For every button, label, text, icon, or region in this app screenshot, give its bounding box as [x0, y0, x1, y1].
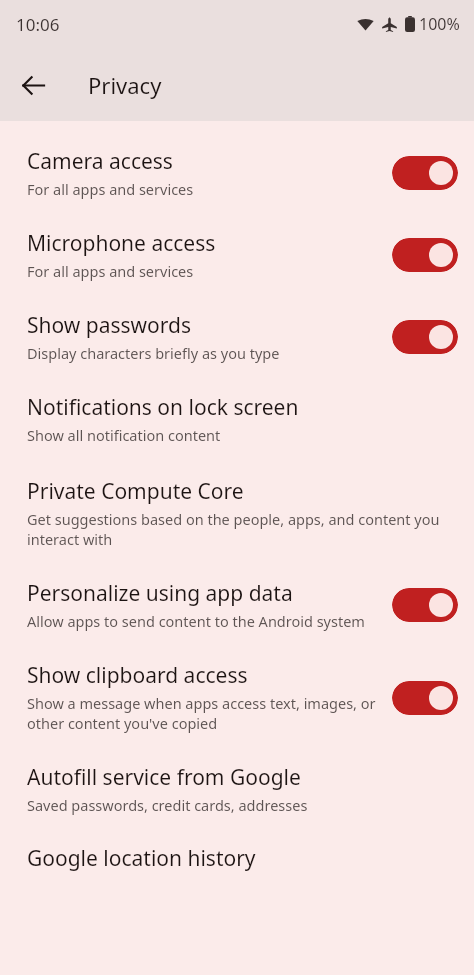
staticText: For all apps and services: [27, 179, 194, 199]
staticText: Saved passwords, credit cards, addresses: [27, 795, 308, 815]
staticText: Autofill service from Google: [27, 763, 301, 792]
staticText: Notifications on lock screen: [27, 393, 299, 422]
staticText: Show a message when apps access text, im…: [27, 693, 380, 734]
staticText: Show all notification content: [27, 425, 221, 445]
staticText: 10:06: [16, 13, 60, 36]
button[interactable]: Toggle: [392, 681, 458, 715]
button[interactable]: Toggle: [392, 238, 458, 272]
button[interactable]: Microphone access: [0, 229, 474, 281]
button[interactable]: Private Compute Core: [0, 477, 474, 550]
staticText: Allow apps to send content to the Androi…: [27, 611, 365, 631]
button[interactable]: Show clipboard access: [0, 661, 474, 734]
staticText: Camera access: [27, 147, 173, 176]
button[interactable]: Camera access: [0, 147, 474, 199]
staticText: Private Compute Core: [27, 477, 244, 506]
staticText: Display characters briefly as you type: [27, 343, 280, 363]
button[interactable]: Toggle: [392, 156, 458, 190]
staticText: Get suggestions based on the people, app…: [27, 509, 458, 550]
staticText: Personalize using app data: [27, 579, 293, 608]
button[interactable]: Toggle: [392, 588, 458, 622]
button[interactable]: Show passwords: [0, 311, 474, 363]
staticText: Show passwords: [27, 311, 192, 340]
button[interactable]: Notifications on lock screen: [0, 393, 474, 445]
staticText: Show clipboard access: [27, 661, 248, 690]
staticText: Microphone access: [27, 229, 216, 258]
button[interactable]: Google location history: [0, 844, 474, 873]
button[interactable]: Personalize using app data: [0, 579, 474, 631]
button[interactable]: Autofill service from Google: [0, 763, 474, 815]
button[interactable]: Back: [11, 63, 55, 107]
staticText: Google location history: [27, 844, 256, 873]
staticText: 100%: [419, 13, 460, 35]
staticText: For all apps and services: [27, 261, 194, 281]
staticText: Privacy: [88, 70, 162, 100]
button[interactable]: Toggle: [392, 320, 458, 354]
